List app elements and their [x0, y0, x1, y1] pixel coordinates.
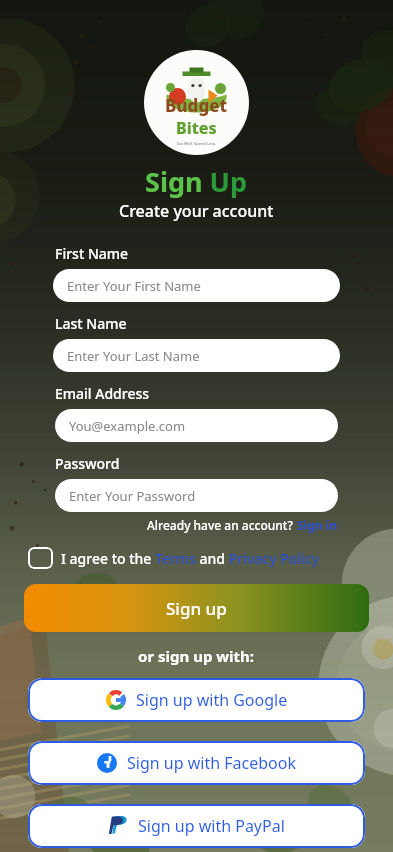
staticText: Password	[55, 454, 120, 473]
staticText: Already have an account?	[147, 517, 293, 533]
staticText: Bites	[176, 117, 217, 139]
staticText: Sign up with PayPal	[138, 815, 285, 837]
staticText: Enter Your Password	[69, 487, 196, 505]
staticText: Enter Your Last Name	[67, 347, 200, 365]
button[interactable]: Enter Your Last Name	[53, 339, 340, 372]
button[interactable]: Agree to terms checkbox	[28, 547, 393, 569]
button[interactable]: Sign up	[24, 584, 369, 632]
button[interactable]: Enter Your First Name	[53, 269, 340, 302]
staticText: Sign in	[297, 517, 338, 533]
button[interactable]: Sign up with Facebook	[28, 741, 365, 785]
button[interactable]: You@example.com	[55, 409, 338, 442]
button[interactable]: Sign up with PayPal	[28, 804, 365, 848]
button[interactable]: Enter Your Password	[55, 479, 338, 512]
other: Agree to terms checkbox	[28, 547, 53, 569]
staticText: I agree to the Terms and Privacy Policy	[61, 549, 320, 568]
staticText: Sign up with Google	[136, 689, 288, 711]
button[interactable]: Sign up with Google	[28, 678, 365, 722]
button[interactable]: Sign in	[297, 517, 338, 533]
staticText: Create your account	[119, 200, 274, 222]
staticText: Sign up with Facebook	[127, 752, 296, 774]
staticText: You@example.com	[69, 417, 186, 435]
staticText: Last Name	[55, 314, 127, 333]
staticText: Sign Up	[145, 163, 248, 200]
staticText: Sign up	[166, 597, 227, 620]
staticText: First Name	[55, 244, 129, 263]
staticText: Email Address	[55, 384, 150, 403]
staticText: Budget	[165, 94, 228, 117]
staticText: or sign up with:	[138, 646, 255, 666]
staticText: Eat Well. Spend Less.	[177, 141, 217, 146]
staticText: Enter Your First Name	[67, 277, 201, 295]
